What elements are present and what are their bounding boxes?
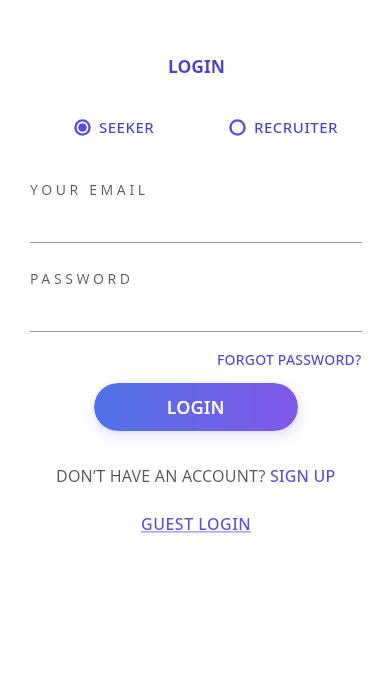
staticText: LOGIN	[167, 395, 225, 419]
staticText: PASSWORD	[30, 269, 134, 288]
button[interactable]: LOGIN	[94, 383, 298, 431]
staticText: YOUR EMAIL	[30, 180, 149, 199]
staticText: SEEKER	[99, 117, 155, 137]
button[interactable]: DON’T HAVE AN ACCOUNT? SIGN UP	[56, 465, 336, 487]
button[interactable]: GUEST LOGIN	[141, 513, 252, 535]
button[interactable]: RECRUITER	[229, 117, 338, 137]
button[interactable]: SEEKER	[74, 117, 155, 137]
staticText: LOGIN	[168, 54, 225, 78]
staticText: RECRUITER	[254, 117, 338, 137]
button[interactable]: FORGOT PASSWORD?	[217, 350, 362, 369]
